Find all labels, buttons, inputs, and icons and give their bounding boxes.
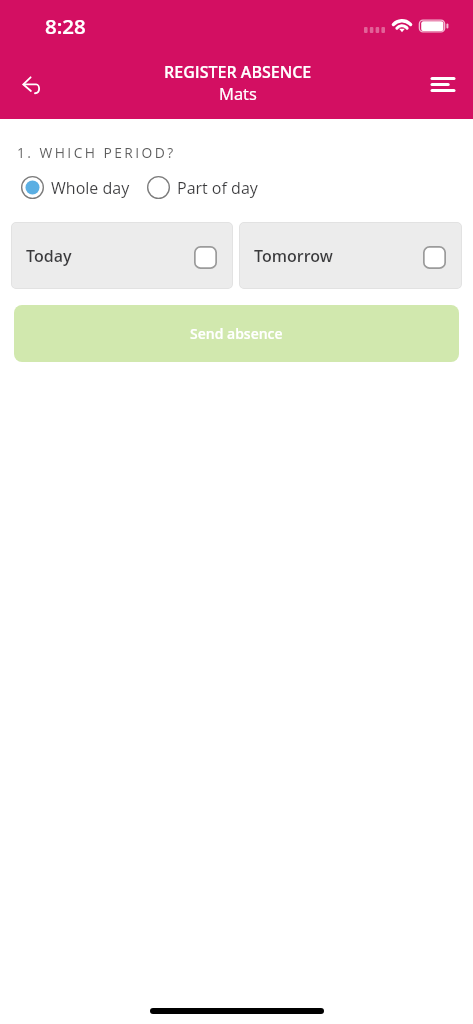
button[interactable]: Tomorrow [239,222,462,289]
button[interactable]: Back [11,64,53,106]
staticText: 1. WHICH PERIOD? [17,143,176,162]
button[interactable]: Send absence [14,305,459,362]
staticText: Mats [219,82,257,104]
staticText: Whole day [51,177,130,199]
button[interactable]: Today [11,222,233,289]
staticText: Today [26,245,72,267]
button[interactable]: Whole day [21,176,130,199]
button[interactable]: Part of day [147,176,258,199]
staticText: Part of day [177,177,258,199]
staticText: Tomorrow [254,245,333,267]
button[interactable]: Menu [423,65,462,104]
staticText: Send absence [190,324,283,343]
staticText: REGISTER ABSENCE [164,61,312,83]
staticText: 8:28 [45,12,86,40]
